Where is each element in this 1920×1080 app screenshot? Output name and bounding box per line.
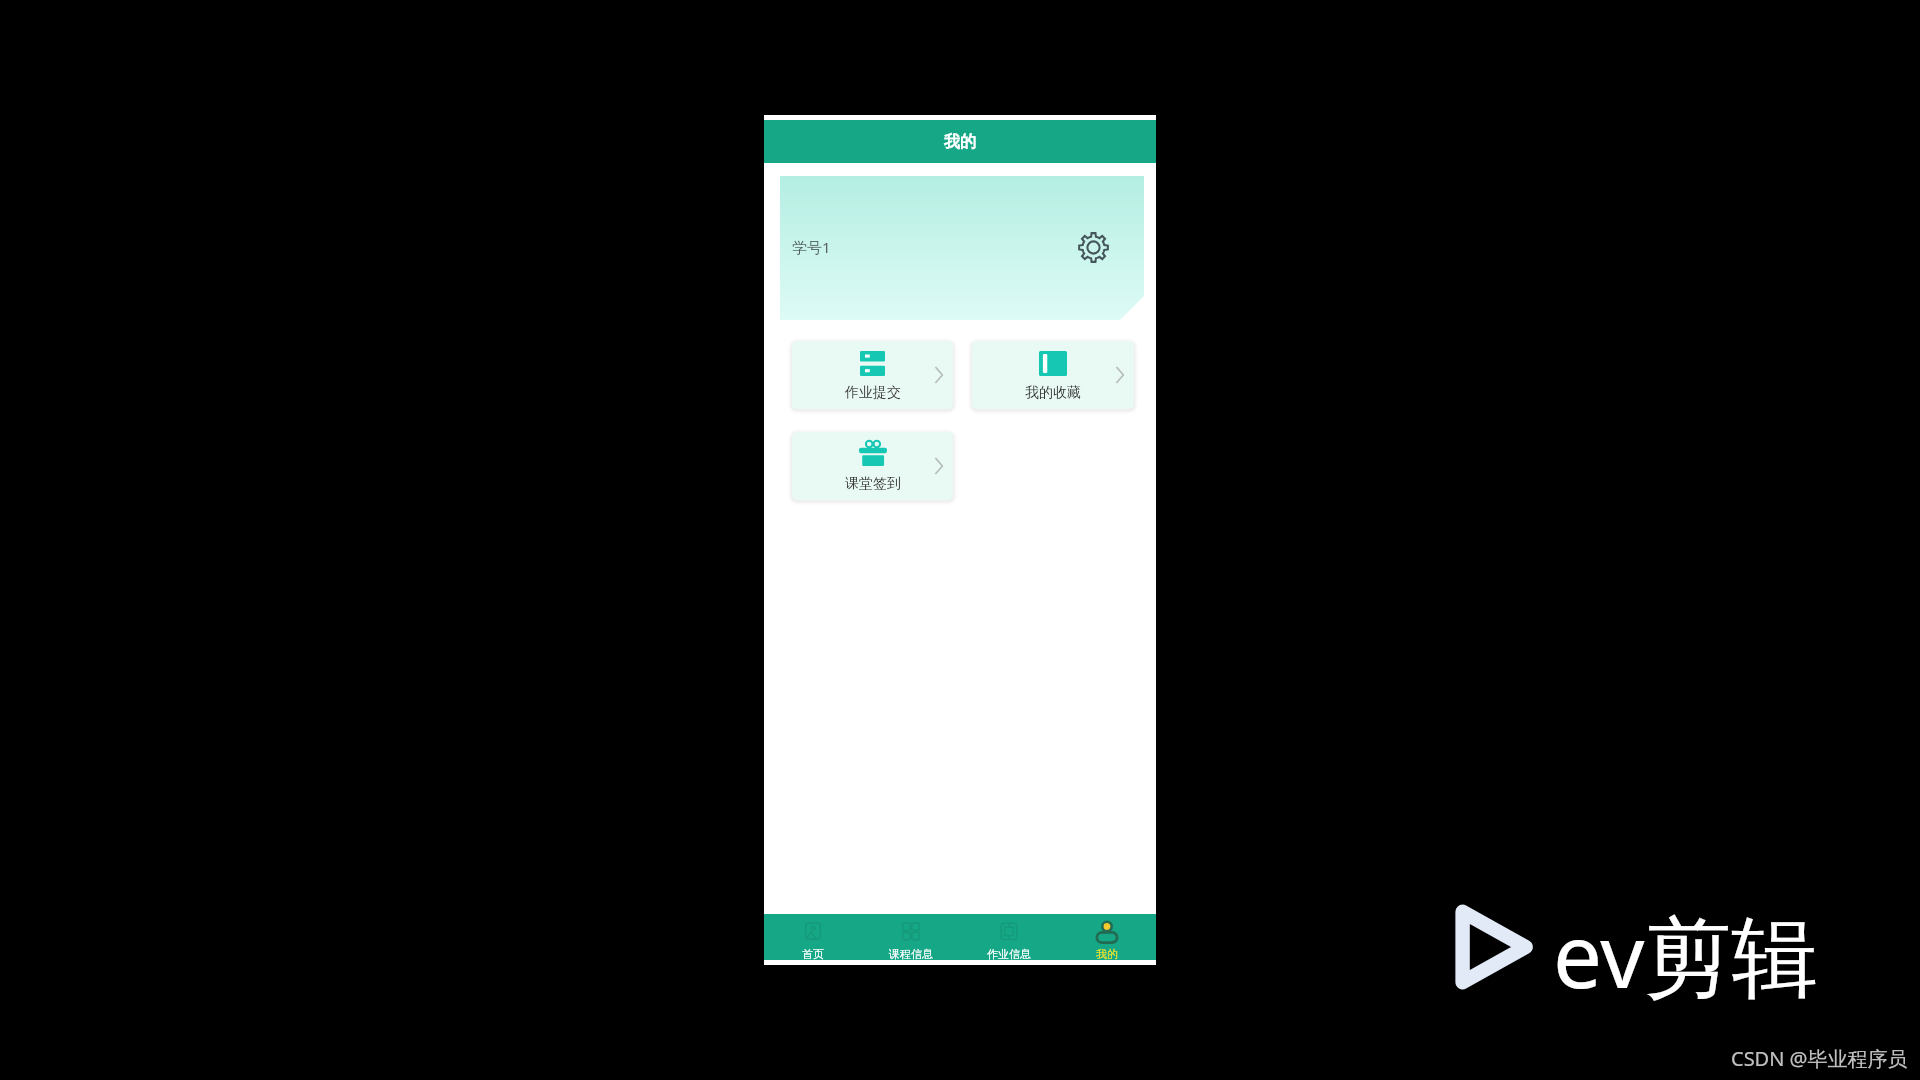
button[interactable]: 作业信息 — [960, 914, 1058, 960]
staticText: 我的 — [944, 132, 976, 152]
button[interactable]: 首页 — [764, 914, 862, 960]
staticText: 学号1 — [792, 237, 831, 257]
button[interactable]: Settings — [1077, 231, 1110, 264]
staticText: 课堂签到 — [845, 475, 901, 493]
button[interactable]: 我的收藏 — [972, 341, 1134, 409]
button[interactable]: 我的 — [1058, 914, 1156, 960]
staticText: ev剪辑 — [1553, 895, 1819, 1014]
staticText: 首页 — [802, 947, 824, 961]
staticText: 作业提交 — [845, 384, 901, 402]
staticText: 作业信息 — [987, 947, 1031, 961]
staticText: 我的 — [1096, 947, 1118, 961]
staticText: CSDN @毕业程序员 — [1731, 1045, 1908, 1072]
staticText: 课程信息 — [889, 947, 933, 961]
button[interactable]: 作业提交 — [792, 341, 953, 409]
button[interactable]: 课程信息 — [862, 914, 960, 960]
button[interactable]: 课堂签到 — [792, 432, 953, 500]
staticText: 我的收藏 — [1025, 384, 1081, 402]
